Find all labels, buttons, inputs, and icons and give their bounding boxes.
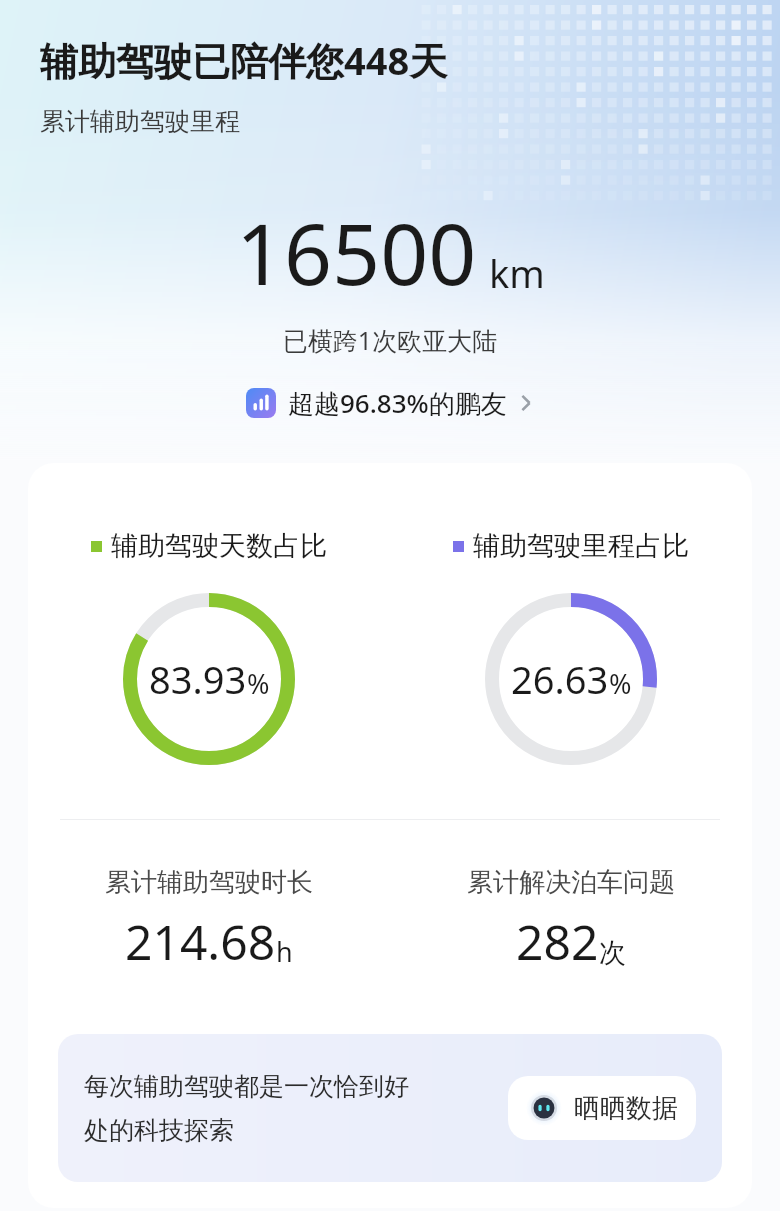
staticText: km xyxy=(489,247,545,299)
staticText: 晒晒数据 xyxy=(574,1092,678,1125)
staticText: 次 xyxy=(599,936,626,970)
button[interactable]: Share data robot xyxy=(508,1076,696,1140)
staticText: 累计辅助驾驶时长 xyxy=(105,866,313,899)
staticText: 83.93 xyxy=(149,653,247,705)
button[interactable]: 辅助驾驶里程占比 xyxy=(390,529,752,765)
staticText: 辅助驾驶天数占比 xyxy=(111,529,327,563)
staticText: h xyxy=(276,933,293,970)
staticText: 282 xyxy=(516,909,599,974)
staticText: 214.68 xyxy=(125,909,276,974)
staticText: 累计辅助驾驶里程 xyxy=(40,106,240,137)
staticText: 累计解决泊车问题 xyxy=(467,866,675,899)
button[interactable]: 超越96.83%的鹏友 xyxy=(232,379,549,427)
staticText: 已横跨1次欧亚大陆 xyxy=(0,323,780,357)
button[interactable]: 辅助驾驶天数占比 xyxy=(28,529,390,765)
staticText: 26.63 xyxy=(511,653,609,705)
staticText: % xyxy=(609,665,632,702)
button[interactable]: 累计辅助驾驶时长 xyxy=(28,866,390,974)
staticText: 16500 xyxy=(236,195,477,309)
staticText: 每次辅助驾驶都是一次恰到好 处的科技探索 xyxy=(84,1071,498,1146)
staticText: 超越96.83%的鹏友 xyxy=(288,385,507,421)
other: Share data robot xyxy=(526,1090,562,1126)
staticText: 辅助驾驶里程占比 xyxy=(473,529,689,563)
button[interactable]: 累计解决泊车问题 xyxy=(390,866,752,974)
staticText: 辅助驾驶已陪伴您448天 xyxy=(40,34,448,86)
staticText: % xyxy=(247,665,270,702)
